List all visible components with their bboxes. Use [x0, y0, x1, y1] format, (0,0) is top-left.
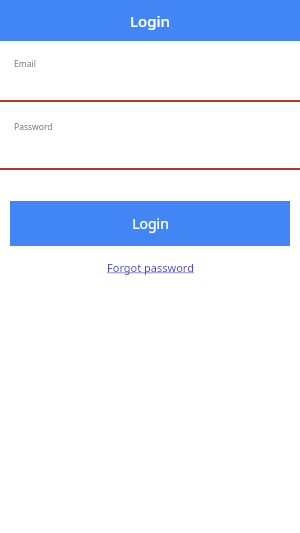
button[interactable]: Password: [0, 102, 300, 168]
button[interactable]: Email: [0, 41, 300, 100]
staticText: Email: [14, 58, 36, 70]
button[interactable]: Forgot password: [103, 258, 198, 277]
staticText: Password: [14, 121, 53, 133]
staticText: Forgot password: [107, 260, 194, 275]
button[interactable]: Login: [10, 201, 290, 246]
staticText: Login: [132, 214, 169, 233]
staticText: Login: [130, 11, 170, 31]
